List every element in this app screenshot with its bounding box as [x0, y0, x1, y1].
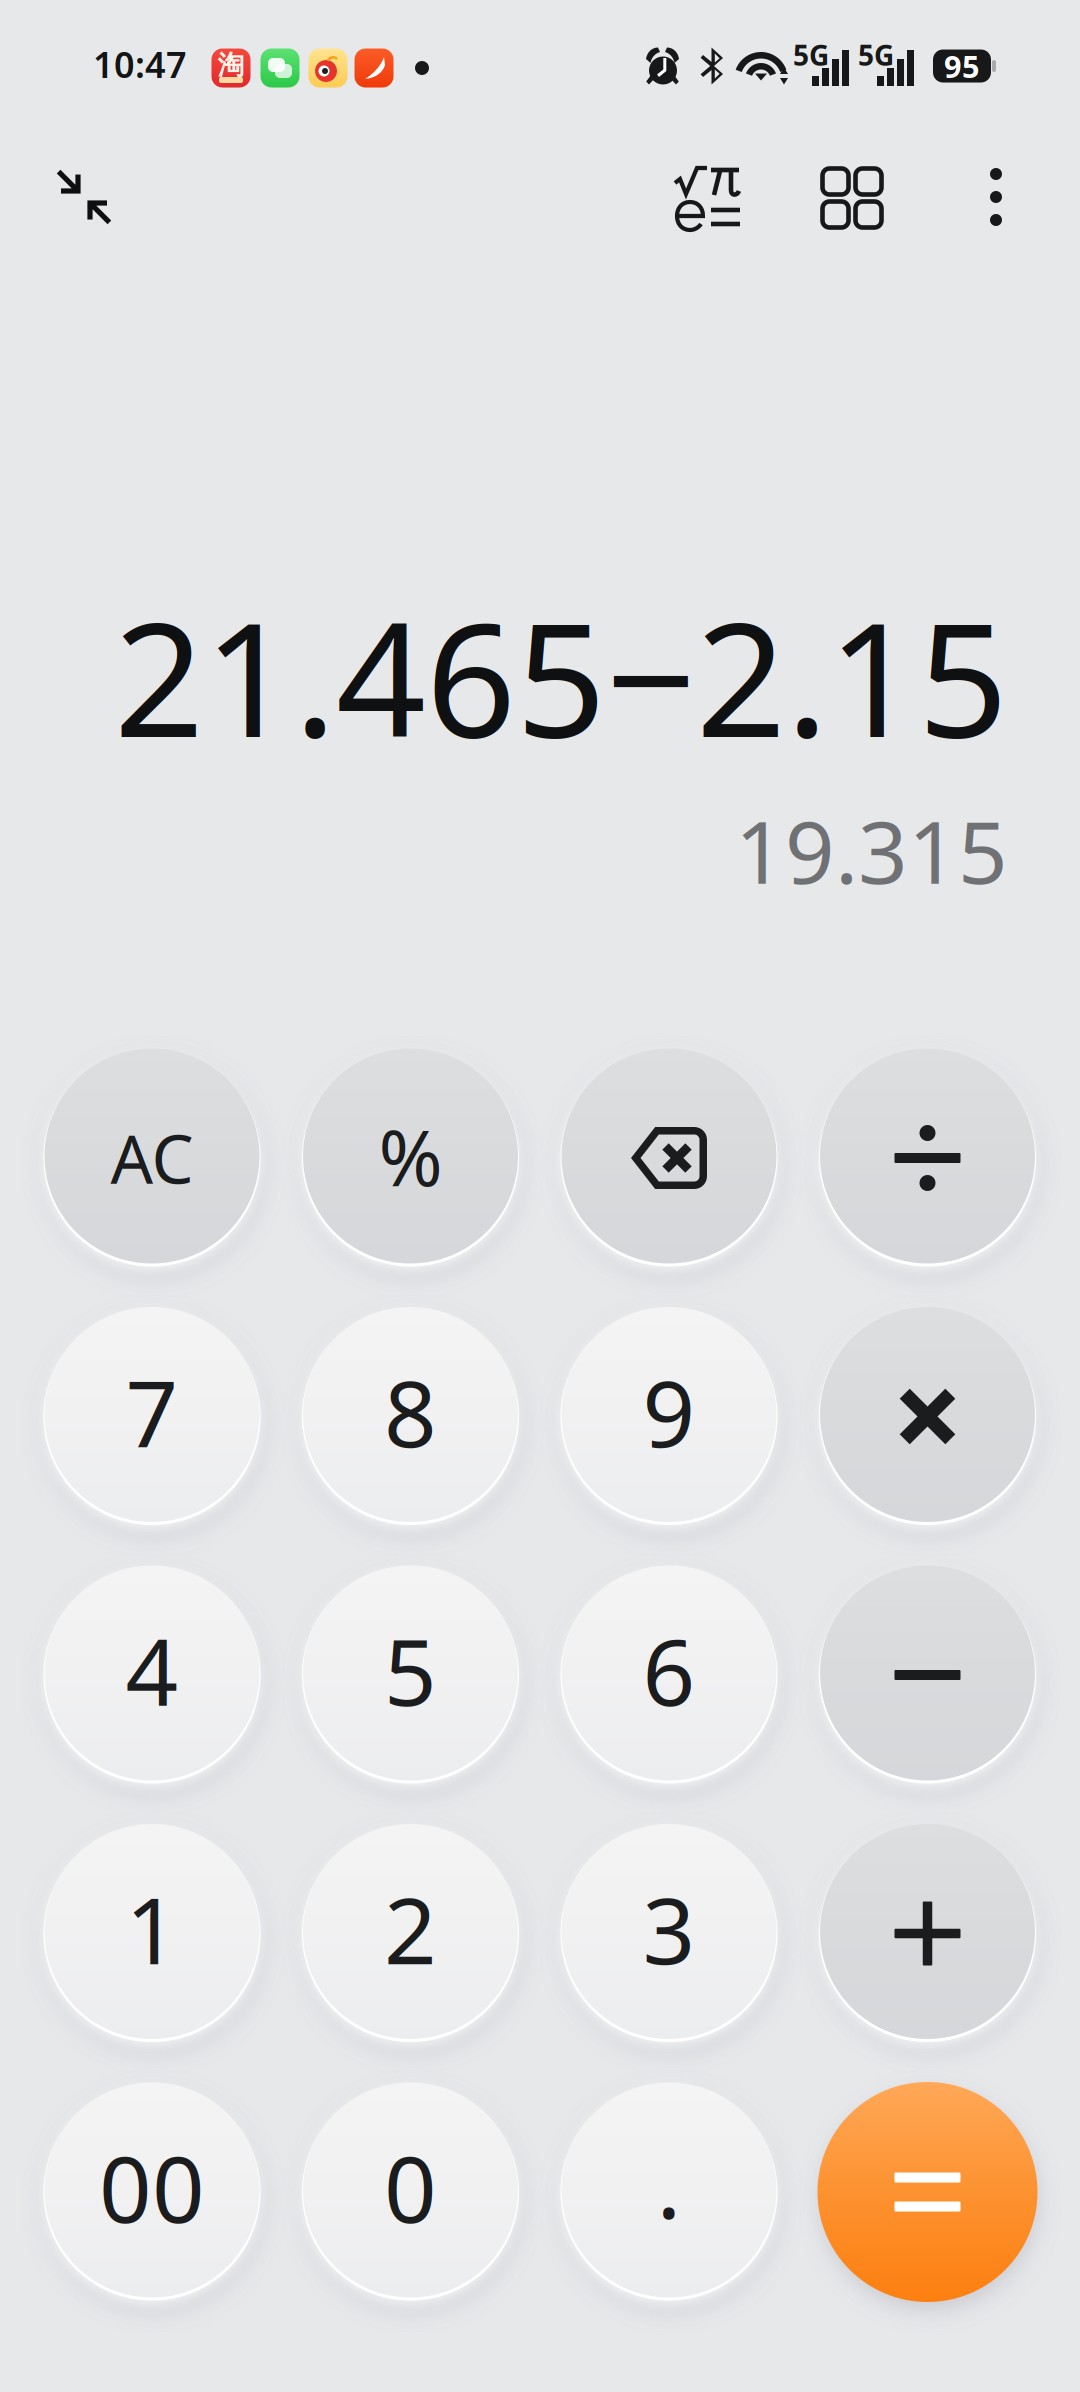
staticText: 4 — [125, 1609, 178, 1731]
button[interactable]: 0 — [300, 2082, 520, 2302]
staticText: 5G — [793, 36, 829, 74]
staticText: 2 — [384, 1867, 437, 1990]
button[interactable]: 7 — [42, 1306, 262, 1526]
staticText: 9 — [642, 1350, 695, 1473]
staticText: 95 — [944, 46, 980, 86]
button[interactable]: Collapse — [24, 142, 144, 252]
button[interactable]: 3 — [559, 1823, 779, 2043]
staticText: 6 — [642, 1609, 695, 1731]
button[interactable]: % — [300, 1048, 520, 1268]
button[interactable]: AC — [42, 1048, 262, 1268]
staticText: 10:47 — [93, 40, 187, 88]
button[interactable]: 5 — [300, 1565, 520, 1785]
button[interactable]: 1 — [42, 1823, 262, 2043]
button[interactable]: Minus — [817, 1565, 1037, 1785]
staticText: 19.315 — [735, 792, 1008, 908]
button[interactable]: Scientific — [648, 144, 768, 254]
staticText: 5G — [858, 36, 894, 74]
button[interactable]: 9 — [559, 1306, 779, 1526]
staticText: 3 — [642, 1867, 695, 1990]
button[interactable]: . — [559, 2082, 779, 2302]
button[interactable]: 2 — [300, 1823, 520, 2043]
staticText: 5 — [384, 1609, 437, 1731]
button[interactable]: More options — [941, 142, 1051, 252]
staticText: 0 — [384, 2126, 437, 2248]
button[interactable]: 00 — [42, 2082, 262, 2302]
button[interactable]: Equals — [817, 2082, 1037, 2302]
staticText: 1 — [125, 1867, 178, 1990]
button[interactable]: Multiply — [817, 1306, 1037, 1526]
staticText: 00 — [99, 2126, 205, 2248]
staticText: 淘 — [217, 49, 244, 81]
button[interactable]: 6 — [559, 1565, 779, 1785]
button[interactable]: 8 — [300, 1306, 520, 1526]
staticText: . — [656, 2122, 681, 2244]
button[interactable]: Divide — [817, 1048, 1037, 1268]
staticText: % — [378, 1105, 442, 1207]
button[interactable]: Backspace — [559, 1048, 779, 1268]
staticText: 8 — [384, 1350, 437, 1473]
button[interactable]: Plus — [817, 1823, 1037, 2043]
button[interactable]: Unit converter — [792, 143, 912, 253]
staticText: AC — [110, 1114, 193, 1202]
button[interactable]: 4 — [42, 1565, 262, 1785]
staticText: 21.465−2.15 — [114, 571, 1008, 780]
staticText: 7 — [125, 1350, 178, 1473]
